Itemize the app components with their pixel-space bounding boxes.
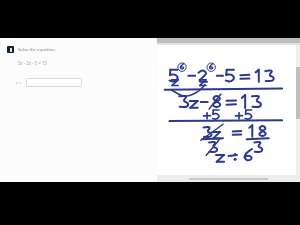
staticText: 5z - 2z - 5 = 13 [18,60,47,66]
button[interactable]: Exercise [0,38,157,182]
staticText: Solve the equation. [18,47,56,53]
button[interactable]: Exercise [7,46,14,53]
staticText: z = [16,80,22,86]
button[interactable] [26,78,82,87]
